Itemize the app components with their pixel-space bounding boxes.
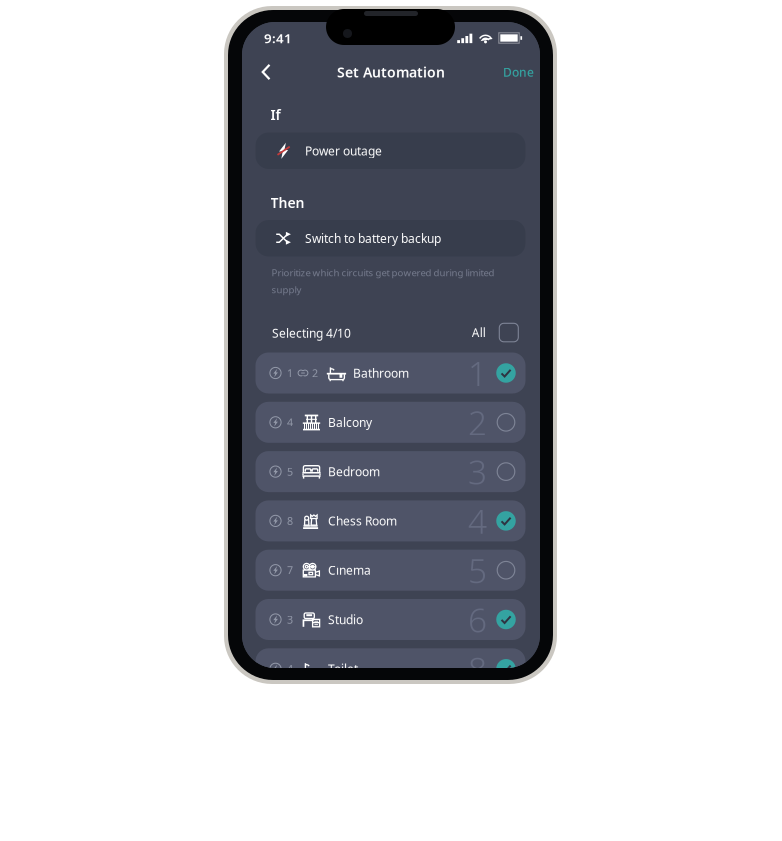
- button[interactable]: 3: [255, 599, 525, 640]
- staticText: 4: [468, 498, 487, 544]
- staticText: If: [270, 105, 280, 124]
- staticText: Switch to battery backup: [305, 230, 441, 246]
- staticText: 2: [468, 400, 487, 445]
- staticText: 3: [468, 449, 487, 494]
- staticText: All: [472, 324, 486, 341]
- staticText: supply: [271, 283, 301, 296]
- staticText: Balcony: [328, 414, 372, 430]
- staticText: 4: [287, 661, 293, 676]
- button[interactable]: Switch to battery backup: [255, 220, 525, 256]
- staticText: 8: [287, 514, 293, 528]
- staticText: Studio: [328, 611, 363, 628]
- button[interactable]: 4: [255, 402, 525, 443]
- button[interactable]: 5: [255, 451, 525, 492]
- staticText: 9:41: [264, 29, 292, 47]
- staticText: Toilet: [328, 661, 358, 677]
- button[interactable]: 8: [255, 500, 525, 541]
- button[interactable]: 4: [255, 648, 525, 689]
- staticText: Power outage: [305, 143, 382, 159]
- staticText: 2: [312, 366, 318, 380]
- staticText: 8: [468, 646, 487, 691]
- staticText: 1: [468, 350, 487, 396]
- staticText: 7: [287, 563, 293, 577]
- staticText: 6: [468, 597, 487, 642]
- button[interactable]: All: [472, 320, 518, 345]
- button[interactable]: Done: [491, 56, 540, 88]
- staticText: Bathroom: [353, 365, 409, 381]
- staticText: Selecting 4/10: [272, 325, 351, 341]
- staticText: Cinema: [328, 562, 371, 578]
- button[interactable]: Power outage: [255, 132, 525, 169]
- staticText: Then: [270, 193, 304, 212]
- staticText: Set Automation: [337, 62, 445, 82]
- button[interactable]: 1: [255, 352, 525, 393]
- staticText: Done: [503, 64, 534, 80]
- staticText: 5: [468, 547, 487, 593]
- staticText: Chess Room: [328, 513, 397, 529]
- button[interactable]: 7: [255, 550, 525, 591]
- staticText: 5: [287, 464, 293, 479]
- staticText: 4: [287, 415, 293, 429]
- staticText: Prioritize which circuits get powered du…: [271, 266, 494, 279]
- staticText: Bedroom: [328, 463, 380, 480]
- staticText: 1: [287, 366, 293, 380]
- staticText: 3: [287, 612, 293, 627]
- button[interactable]: Back: [242, 55, 283, 88]
